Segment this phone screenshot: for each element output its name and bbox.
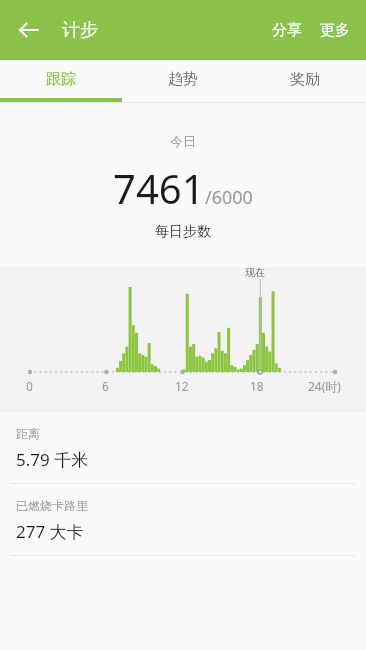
staticText: 12 bbox=[175, 378, 189, 394]
staticText: 18 bbox=[250, 378, 264, 394]
button[interactable]: 距离 bbox=[0, 412, 366, 483]
button[interactable]: Back bbox=[9, 10, 49, 50]
staticText: 5.79 千米 bbox=[16, 448, 89, 471]
button[interactable]: 已燃烧卡路里 bbox=[0, 484, 366, 555]
staticText: /6000 bbox=[205, 185, 253, 210]
button[interactable]: 奖励 bbox=[244, 60, 366, 98]
staticText: 24(时) bbox=[308, 378, 341, 394]
staticText: 7461 bbox=[113, 161, 205, 215]
button[interactable]: 分享 bbox=[263, 9, 311, 52]
staticText: 0 bbox=[26, 378, 33, 394]
staticText: 已燃烧卡路里 bbox=[16, 498, 88, 513]
staticText: 距离 bbox=[16, 426, 40, 441]
staticText: 分享 bbox=[272, 21, 302, 40]
staticText: 更多 bbox=[320, 21, 350, 40]
button[interactable]: 趋势 bbox=[122, 60, 244, 98]
staticText: 今日 bbox=[170, 133, 196, 149]
staticText: 277 大卡 bbox=[16, 520, 84, 543]
staticText: 跟踪 bbox=[46, 70, 76, 89]
staticText: 现在 bbox=[245, 266, 265, 279]
staticText: 趋势 bbox=[168, 70, 198, 89]
button[interactable]: 更多 bbox=[311, 9, 366, 52]
staticText: 计步 bbox=[62, 19, 98, 42]
button[interactable]: 跟踪 bbox=[0, 60, 122, 98]
staticText: 每日步数 bbox=[155, 223, 211, 241]
staticText: 6 bbox=[102, 378, 109, 394]
staticText: 奖励 bbox=[290, 70, 320, 89]
